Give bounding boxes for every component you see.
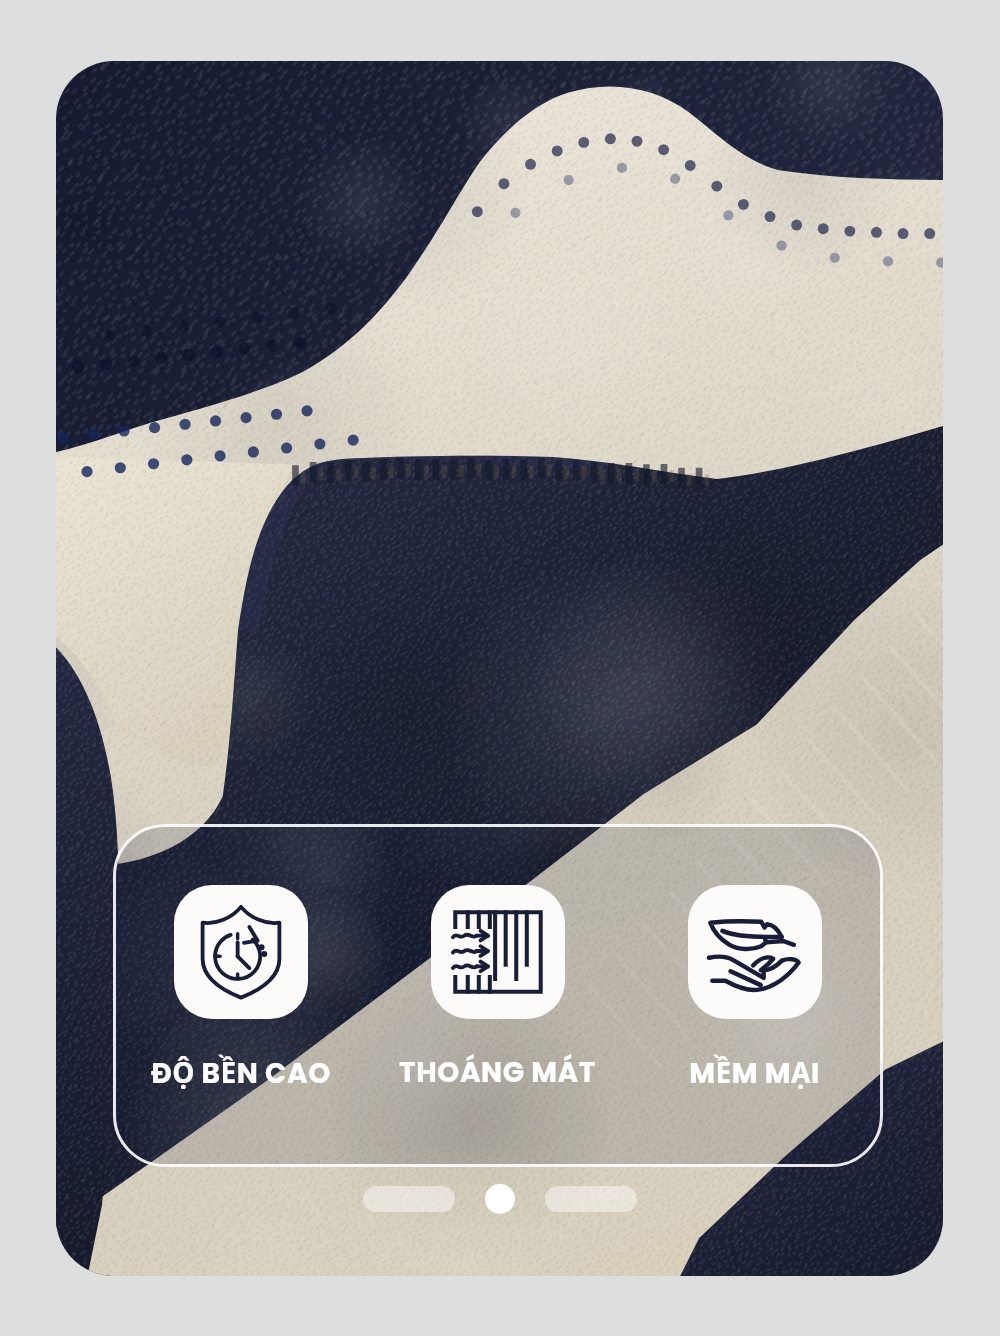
staticText: ĐỘ BỀN CAO: [151, 1053, 331, 1093]
button[interactable]: Current page: [485, 1184, 515, 1214]
button[interactable]: Next page: [545, 1186, 637, 1212]
staticText: THOÁNG MÁT: [399, 1053, 596, 1092]
button[interactable]: MỀM MẠI: [626, 824, 883, 1167]
button[interactable]: Previous page: [363, 1186, 455, 1212]
button[interactable]: THOÁNG MÁT: [369, 824, 626, 1167]
staticText: MỀM MẠI: [689, 1053, 820, 1093]
button[interactable]: ĐỘ BỀN CAO: [113, 824, 369, 1167]
